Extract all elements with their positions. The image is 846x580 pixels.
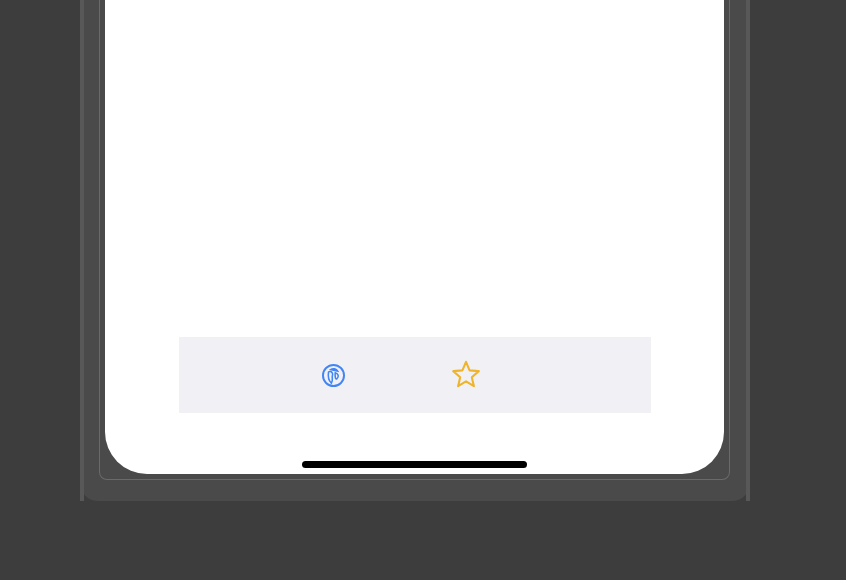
button[interactable]: Language [309, 351, 357, 399]
button[interactable]: Favorite [442, 351, 490, 399]
